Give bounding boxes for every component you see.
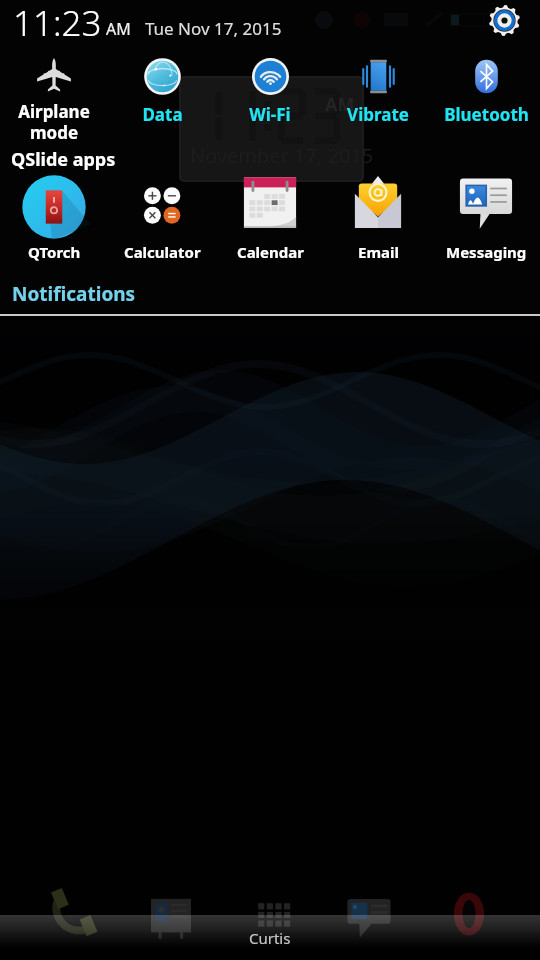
button[interactable]: Messaging bbox=[432, 172, 540, 264]
button[interactable]: QTorch bbox=[0, 172, 108, 264]
staticText: Airplane mode bbox=[18, 100, 90, 144]
staticText: AM bbox=[325, 92, 355, 117]
button[interactable]: Phone bbox=[43, 886, 99, 942]
button[interactable]: Apps bbox=[242, 886, 298, 942]
button[interactable]: Settings bbox=[488, 4, 521, 37]
button[interactable]: Bluetooth bbox=[432, 52, 540, 148]
button[interactable]: Airplane mode bbox=[0, 52, 108, 148]
staticText: Calendar bbox=[237, 242, 304, 262]
staticText: Tue Nov 17, 2015 bbox=[145, 17, 282, 40]
staticText: Vibrate bbox=[347, 103, 409, 126]
staticText: Notifications bbox=[12, 281, 136, 307]
staticText: Curtis bbox=[249, 928, 291, 948]
staticText: Wi-Fi bbox=[249, 103, 291, 126]
staticText: QSlide apps bbox=[11, 147, 116, 172]
button[interactable]: Data bbox=[108, 52, 216, 148]
button[interactable]: Calculator bbox=[108, 172, 216, 264]
button[interactable]: Messaging bbox=[341, 886, 397, 942]
staticText: Email bbox=[358, 242, 399, 262]
staticText: QTorch bbox=[28, 242, 81, 262]
button[interactable]: Wi-Fi bbox=[216, 52, 324, 148]
button[interactable]: Browser bbox=[441, 886, 497, 942]
button[interactable]: Vibrate bbox=[324, 52, 432, 148]
staticText: 11:23 bbox=[13, 0, 102, 45]
staticText: Messaging bbox=[446, 242, 527, 262]
button[interactable]: Email bbox=[324, 172, 432, 264]
staticText: Bluetooth bbox=[444, 103, 529, 126]
staticText: Calculator bbox=[124, 242, 201, 262]
button[interactable]: Contacts bbox=[143, 886, 199, 942]
staticText: Data bbox=[142, 103, 183, 126]
staticText: November 17, 2015 bbox=[190, 142, 374, 169]
button[interactable]: Calendar bbox=[216, 172, 324, 264]
staticText: AM bbox=[106, 18, 131, 40]
